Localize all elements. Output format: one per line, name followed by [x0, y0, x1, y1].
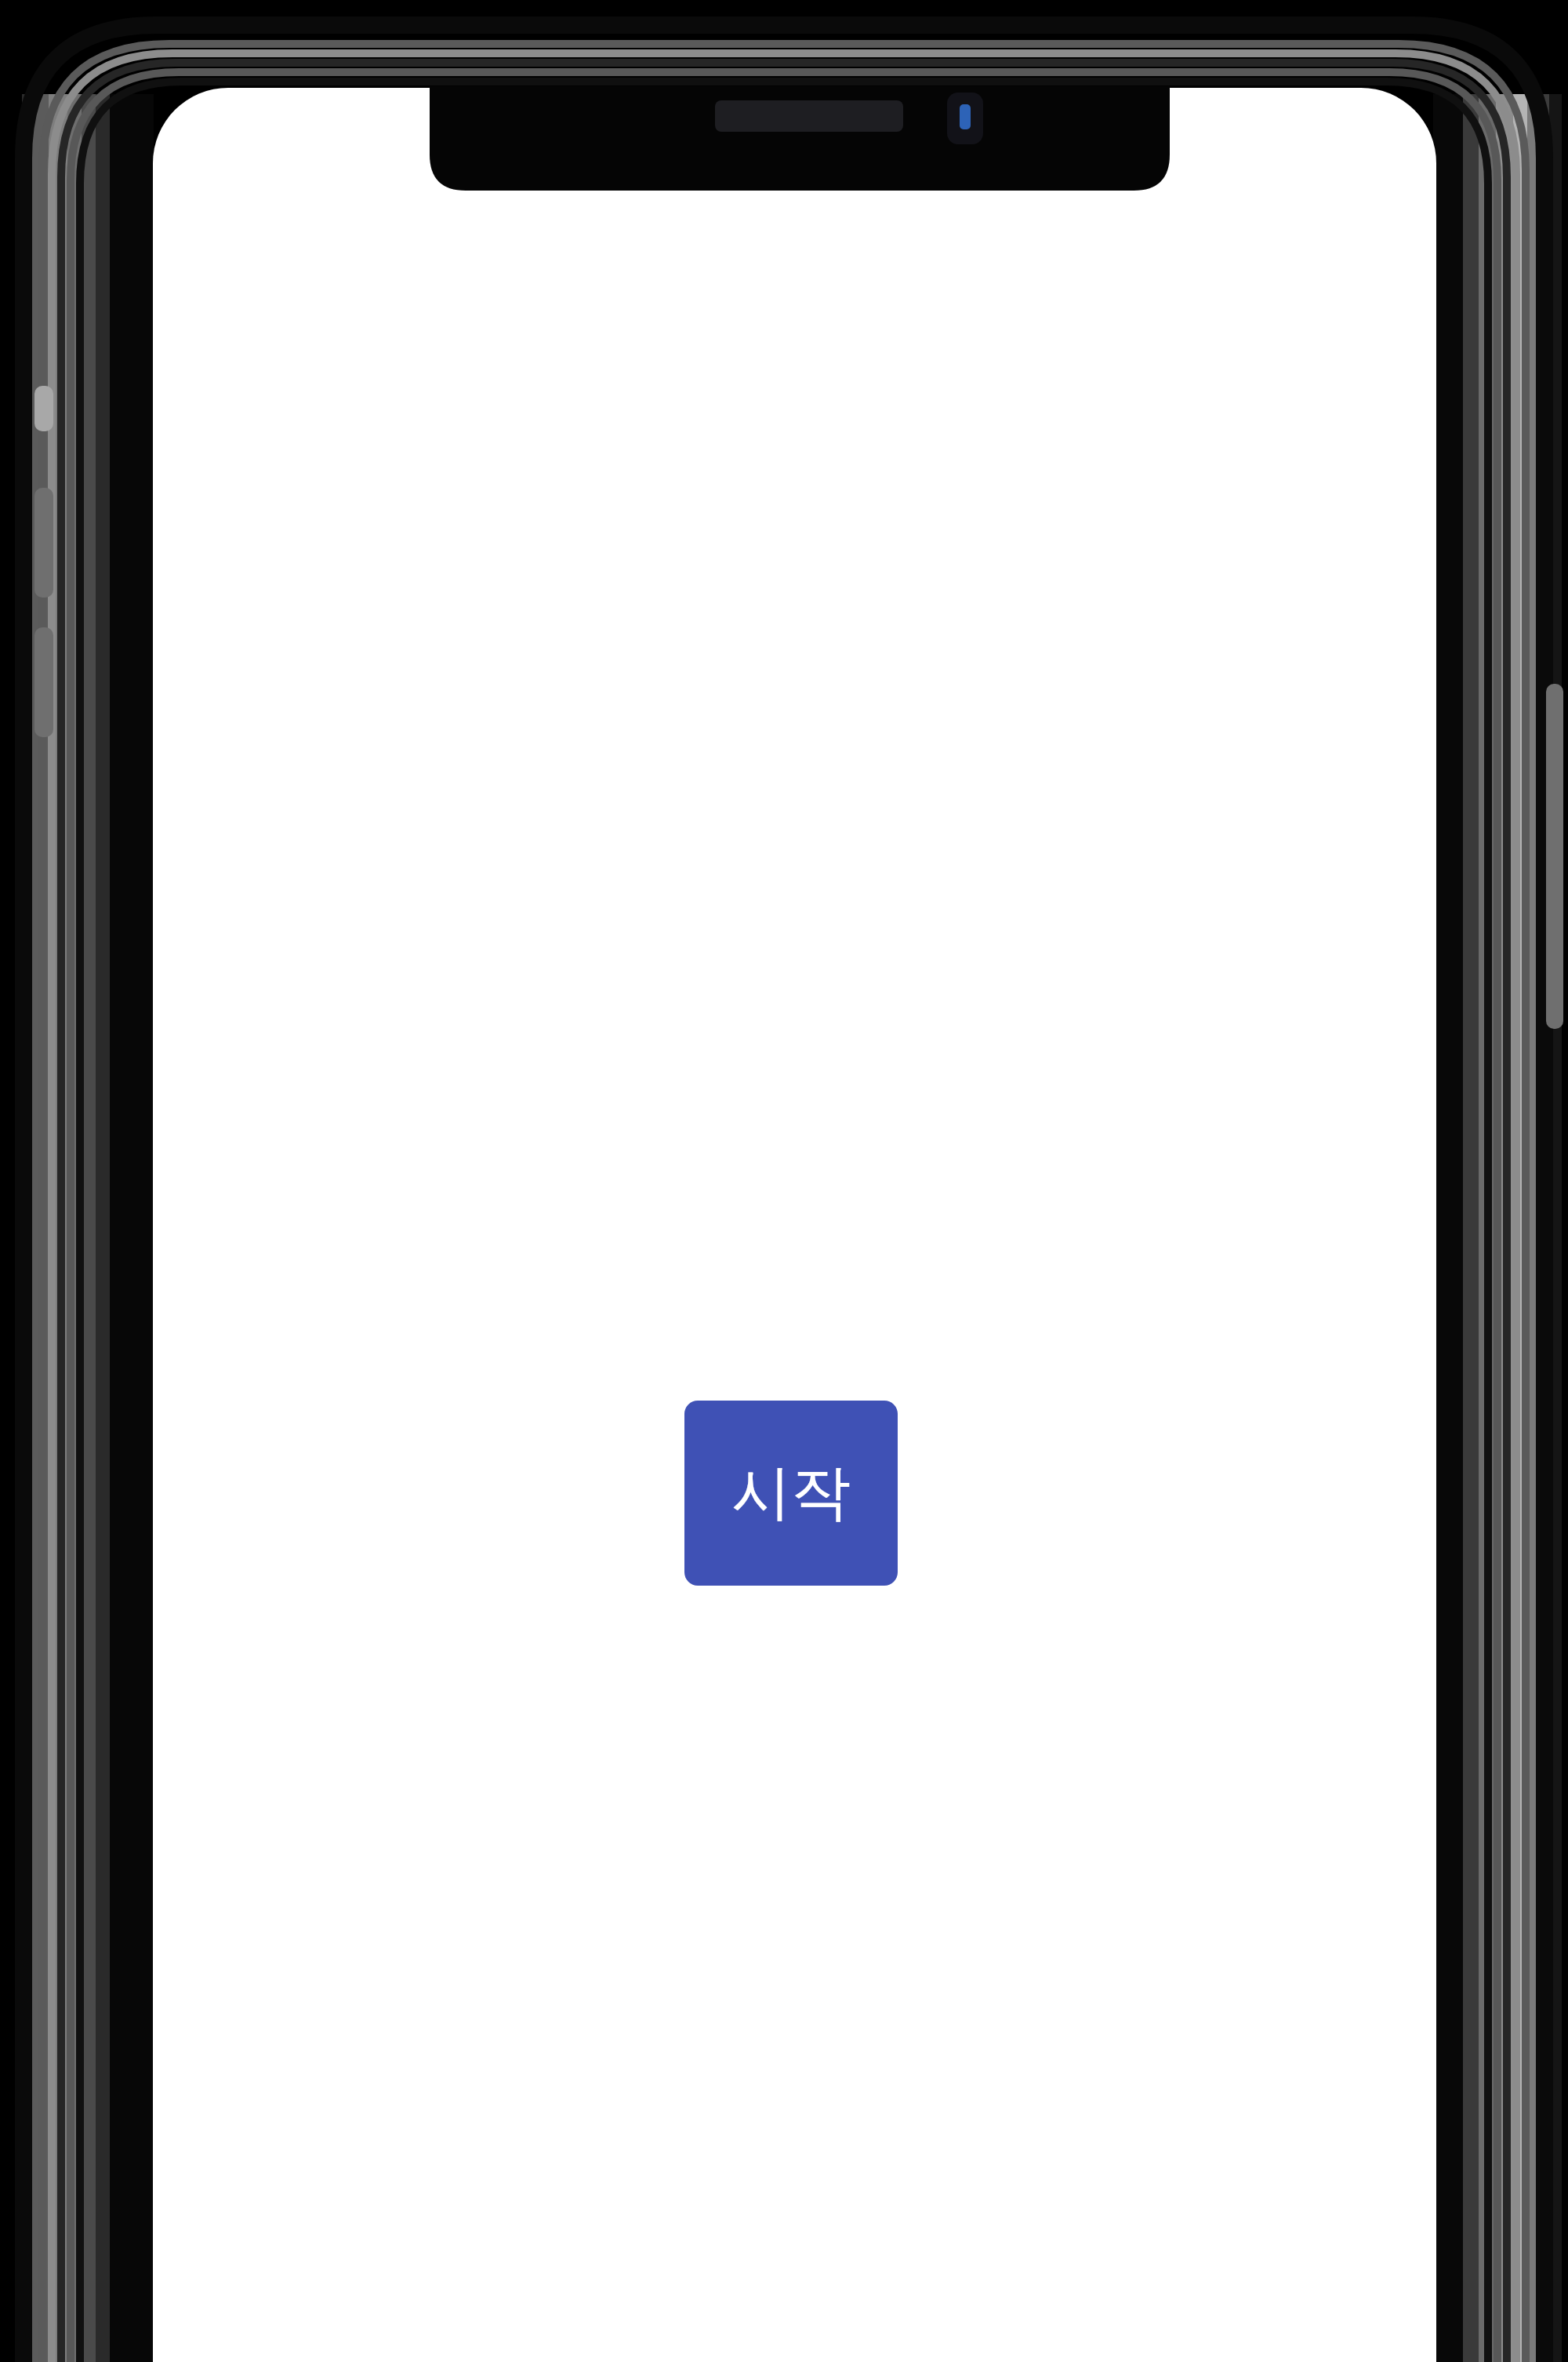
button[interactable]: 시작 — [684, 1401, 898, 1586]
staticText: 시작 — [731, 1455, 851, 1531]
